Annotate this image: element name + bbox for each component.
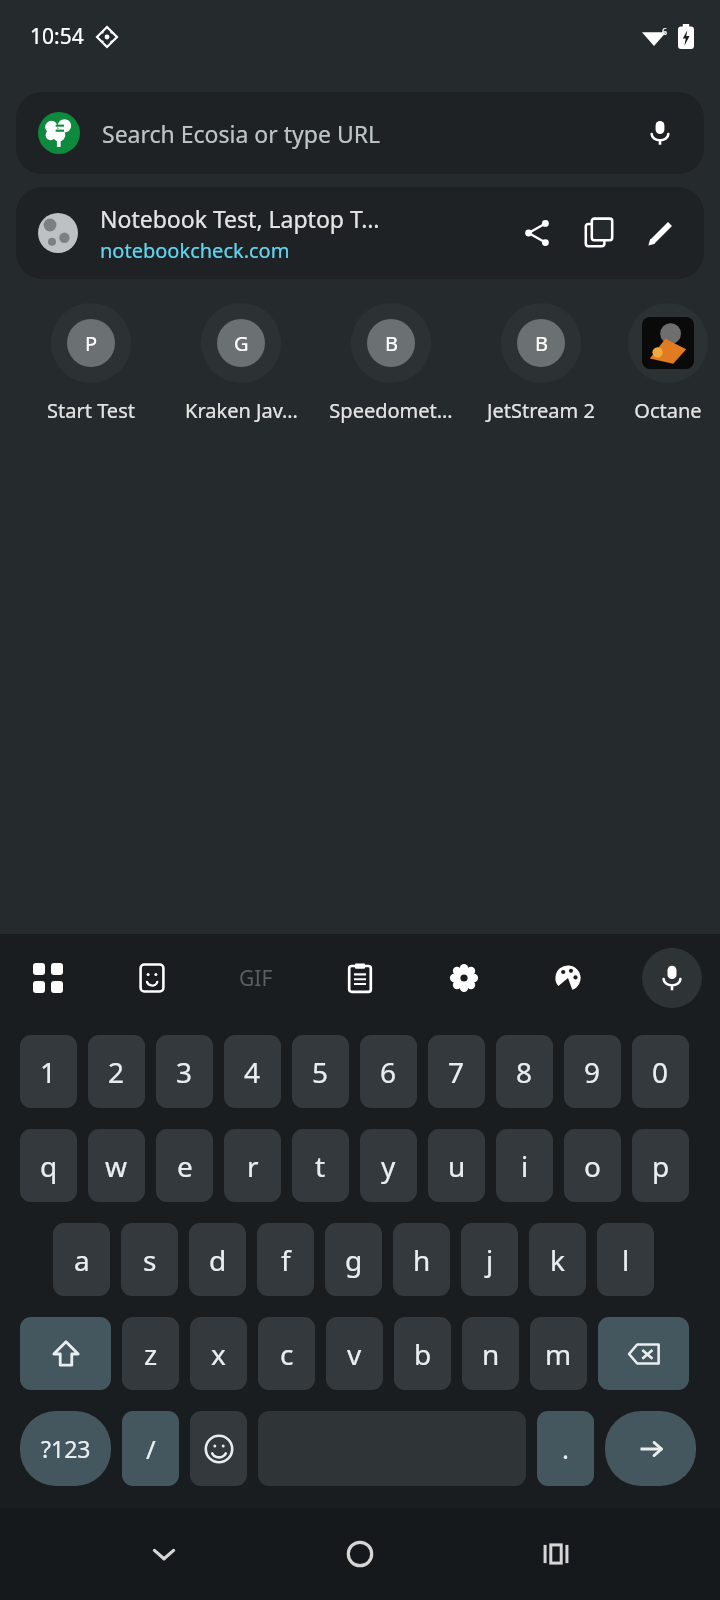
button[interactable]: ?123 — [20, 1411, 111, 1486]
button[interactable]: l — [597, 1223, 654, 1296]
staticText: 0 — [652, 1053, 669, 1091]
button[interactable]: Voice input — [642, 948, 702, 1008]
button[interactable]: y — [360, 1129, 417, 1202]
staticText: 6 — [380, 1053, 397, 1091]
button[interactable]: Backspace — [598, 1317, 689, 1390]
staticText: 4 — [244, 1053, 261, 1091]
button[interactable]: Stickers — [122, 948, 182, 1008]
button[interactable]: i — [496, 1129, 553, 1202]
button[interactable]: B — [466, 303, 616, 424]
button[interactable]: b — [394, 1317, 451, 1390]
button[interactable]: q — [20, 1129, 77, 1202]
button[interactable]: k — [529, 1223, 586, 1296]
button[interactable]: 6 — [360, 1035, 417, 1108]
button[interactable]: 0 — [632, 1035, 689, 1108]
button[interactable]: Clipboard — [330, 948, 390, 1008]
staticText: 1 — [40, 1053, 57, 1091]
button[interactable]: t — [292, 1129, 349, 1202]
button[interactable]: Settings — [434, 948, 494, 1008]
staticText: notebookcheck.com — [100, 237, 290, 264]
staticText: 10:54 — [30, 22, 84, 51]
staticText: b — [414, 1335, 432, 1373]
button[interactable]: 1 — [20, 1035, 77, 1108]
button[interactable]: 3 — [156, 1035, 213, 1108]
button[interactable]: Edit — [630, 202, 692, 264]
staticText: Start Test — [47, 397, 135, 424]
staticText: n — [482, 1335, 500, 1373]
button[interactable]: 9 — [564, 1035, 621, 1108]
button[interactable]: Octane — [616, 303, 720, 424]
button[interactable]: Shift — [20, 1317, 111, 1390]
staticText: 9 — [584, 1053, 601, 1091]
button[interactable]: Copy link — [568, 202, 630, 264]
button[interactable]: G — [166, 303, 316, 424]
button[interactable]: m — [530, 1317, 587, 1390]
button[interactable]: p — [632, 1129, 689, 1202]
staticText: l — [622, 1241, 630, 1279]
button[interactable]: f — [257, 1223, 314, 1296]
staticText: GIF — [239, 964, 273, 993]
staticText: / — [146, 1431, 156, 1466]
button[interactable]: 7 — [428, 1035, 485, 1108]
staticText: h — [413, 1241, 431, 1279]
button[interactable]: j — [461, 1223, 518, 1296]
staticText: s — [143, 1241, 157, 1279]
button[interactable]: . — [537, 1411, 594, 1486]
button[interactable]: u — [428, 1129, 485, 1202]
staticText: j — [486, 1241, 494, 1279]
button[interactable]: n — [462, 1317, 519, 1390]
staticText: G — [234, 330, 249, 357]
staticText: t — [315, 1147, 326, 1185]
staticText: r — [247, 1147, 259, 1185]
button[interactable]: 2 — [88, 1035, 145, 1108]
button[interactable]: v — [326, 1317, 383, 1390]
button[interactable]: d — [189, 1223, 246, 1296]
button[interactable]: 8 — [496, 1035, 553, 1108]
staticText: z — [144, 1335, 158, 1373]
staticText: B — [385, 330, 398, 357]
button[interactable]: Home — [328, 1522, 392, 1586]
button[interactable]: P — [16, 303, 166, 424]
staticText: Speedomet… — [329, 397, 453, 424]
button[interactable]: r — [224, 1129, 281, 1202]
button[interactable]: Hide keyboard — [132, 1522, 196, 1586]
button[interactable]: o — [564, 1129, 621, 1202]
button[interactable]: Notebook Test, Laptop T… — [16, 187, 704, 279]
staticText: 8 — [516, 1053, 533, 1091]
staticText: g — [345, 1241, 363, 1279]
button[interactable]: Share — [506, 202, 568, 264]
button[interactable]: c — [258, 1317, 315, 1390]
button[interactable]: z — [122, 1317, 179, 1390]
staticText: Search Ecosia or type URL — [102, 118, 638, 149]
staticText: y — [381, 1147, 396, 1185]
staticText: B — [535, 330, 548, 357]
staticText: JetStream 2 — [487, 397, 595, 424]
button[interactable]: e — [156, 1129, 213, 1202]
button[interactable]: Search Ecosia or type URL — [16, 92, 704, 174]
button[interactable]: / — [122, 1411, 179, 1486]
staticText: P — [85, 330, 98, 357]
button[interactable]: a — [53, 1223, 110, 1296]
button[interactable]: GIF — [226, 948, 286, 1008]
button[interactable]: g — [325, 1223, 382, 1296]
button[interactable]: Apps — [18, 948, 78, 1008]
staticText: 6 — [662, 25, 668, 37]
staticText: Octane — [634, 397, 702, 424]
button[interactable]: Recents — [524, 1522, 588, 1586]
button[interactable]: h — [393, 1223, 450, 1296]
button[interactable]: 4 — [224, 1035, 281, 1108]
staticText: Kraken Jav… — [185, 397, 298, 424]
button[interactable]: w — [88, 1129, 145, 1202]
button[interactable]: Voice search — [638, 111, 682, 155]
button[interactable]: B — [316, 303, 466, 424]
staticText: w — [105, 1147, 128, 1185]
button[interactable]: Themes — [538, 948, 598, 1008]
staticText: f — [281, 1241, 291, 1279]
staticText: i — [521, 1147, 529, 1185]
button[interactable]: 5 — [292, 1035, 349, 1108]
button[interactable]: Emoji — [190, 1411, 247, 1486]
button[interactable]: Enter — [605, 1411, 696, 1486]
button[interactable]: s — [121, 1223, 178, 1296]
button[interactable]: x — [190, 1317, 247, 1390]
